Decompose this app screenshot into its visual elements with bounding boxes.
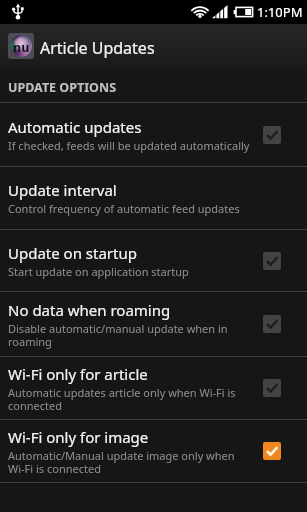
staticText: No data when roaming [8,300,171,320]
staticText: Update interval [8,180,117,200]
staticText: nu [13,39,30,56]
button[interactable]: Update interval [0,167,307,230]
staticText: Control frequency of automatic feed upda… [8,201,240,216]
other: Toggle option [263,315,281,333]
staticText: UPDATE OPTIONS [8,79,117,96]
staticText: Update on startup [8,243,137,263]
staticText: Start update on application startup [8,264,189,279]
other: Toggle option [263,126,281,144]
staticText: Article Updates [40,37,155,59]
staticText: Wi-Fi only for article [8,364,148,384]
staticText: Automatic updates article only when Wi-F… [8,385,253,413]
staticText: Wi-Fi only for image [8,427,149,447]
staticText: If checked, feeds will be updated automa… [8,138,250,153]
staticText: Disable automatic/manual update when in … [8,321,253,349]
staticText: Automatic updates [8,117,142,137]
other: Toggle option [263,442,281,460]
button[interactable]: Wi-Fi only for article [0,357,307,420]
button[interactable]: Wi-Fi only for image [0,420,307,483]
other: Toggle option [263,252,281,270]
button[interactable]: Update on startup [0,230,307,292]
staticText: Automatic/Manual update image only when … [8,448,253,476]
staticText: 1:10PM [257,3,303,21]
button[interactable]: No data when roaming [0,292,307,357]
button[interactable]: Automatic updates [0,103,307,167]
other: Toggle option [263,379,281,397]
